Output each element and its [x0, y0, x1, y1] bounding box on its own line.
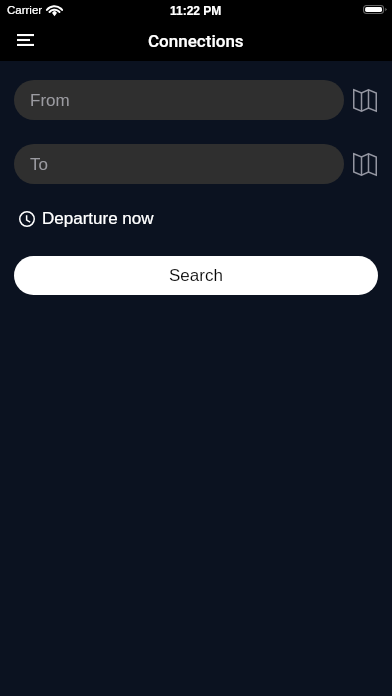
button[interactable]: Open map [345, 144, 385, 184]
button[interactable]: Search [14, 256, 378, 295]
button[interactable]: Open map [345, 80, 385, 120]
staticText: Departure now [42, 209, 154, 228]
button[interactable]: Menu [5, 21, 45, 59]
staticText: Carrier [7, 4, 43, 17]
button[interactable]: From [14, 80, 344, 120]
staticText: To [30, 155, 48, 174]
staticText: 11:22 PM [170, 4, 222, 17]
button[interactable]: Departure now [19, 206, 158, 231]
staticText: Connections [148, 31, 244, 51]
button[interactable]: To [14, 144, 344, 184]
staticText: From [30, 91, 70, 110]
staticText: Search [169, 266, 223, 285]
